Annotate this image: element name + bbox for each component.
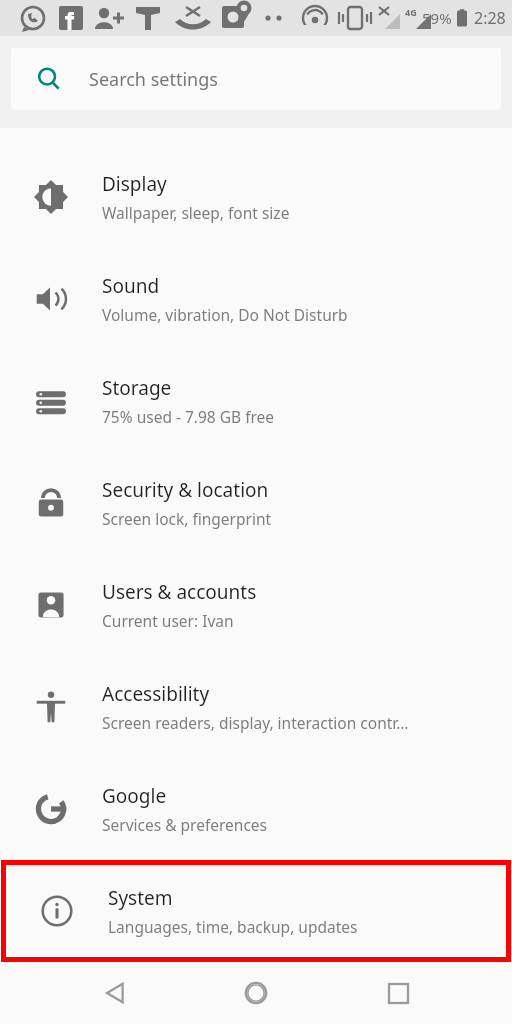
button[interactable]: Search settings — [11, 48, 501, 110]
staticText: 59% — [422, 8, 452, 28]
button[interactable]: Security & location — [0, 452, 512, 554]
staticText: Display — [102, 171, 167, 197]
button[interactable]: System — [6, 865, 506, 957]
staticText: Wallpaper, sleep, font size — [102, 202, 290, 223]
button[interactable]: Storage — [0, 350, 512, 452]
staticText: Google — [102, 783, 167, 809]
staticText: Sound — [102, 273, 160, 299]
staticText: 4G — [405, 6, 417, 18]
button[interactable]: Home — [229, 966, 283, 1020]
button[interactable]: Display — [0, 146, 512, 248]
staticText: Languages, time, backup, updates — [108, 916, 358, 937]
staticText: Services & preferences — [102, 814, 267, 835]
staticText: Users & accounts — [102, 579, 257, 605]
button[interactable]: Google — [0, 758, 512, 860]
staticText: 75% used - 7.98 GB free — [102, 406, 275, 427]
staticText: 2:28 — [474, 7, 506, 29]
staticText: Screen lock, fingerprint — [102, 508, 272, 529]
staticText: System — [108, 885, 173, 911]
staticText: Accessibility — [102, 681, 210, 707]
button[interactable]: Accessibility — [0, 656, 512, 758]
staticText: Security & location — [102, 477, 269, 503]
button[interactable]: Sound — [0, 248, 512, 350]
staticText: Screen readers, display, interaction con… — [102, 712, 409, 733]
staticText: Storage — [102, 375, 172, 401]
button[interactable]: Users & accounts — [0, 554, 512, 656]
staticText: Volume, vibration, Do Not Disturb — [102, 304, 348, 325]
staticText: Current user: Ivan — [102, 610, 234, 631]
button[interactable]: Recent apps — [371, 966, 425, 1020]
button[interactable]: Back — [88, 966, 142, 1020]
staticText: Search settings — [89, 67, 218, 92]
